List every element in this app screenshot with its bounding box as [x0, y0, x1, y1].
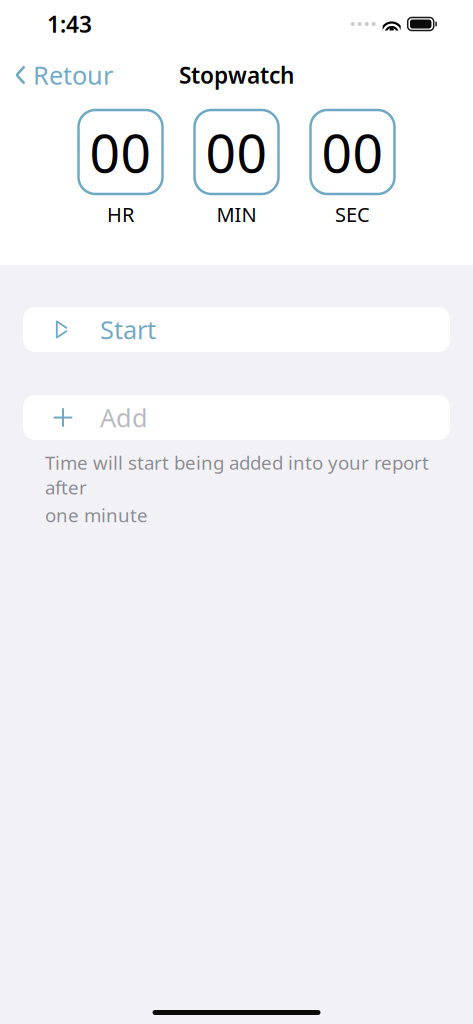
- button[interactable]: Retour: [0, 50, 127, 100]
- button[interactable]: Add: [23, 395, 450, 440]
- staticText: Time will start being added into your re…: [45, 450, 429, 500]
- staticText: Stopwatch: [179, 60, 294, 90]
- staticText: 00: [205, 117, 267, 187]
- staticText: Start: [100, 313, 156, 346]
- staticText: MIN: [216, 201, 256, 228]
- staticText: Retour: [33, 58, 113, 92]
- staticText: 00: [321, 117, 383, 187]
- staticText: HR: [107, 201, 134, 228]
- staticText: 00: [89, 117, 151, 187]
- button[interactable]: Start: [23, 307, 450, 352]
- staticText: one minute: [45, 503, 148, 527]
- staticText: Add: [100, 401, 148, 434]
- staticText: SEC: [335, 201, 370, 228]
- staticText: 1:43: [47, 9, 92, 39]
